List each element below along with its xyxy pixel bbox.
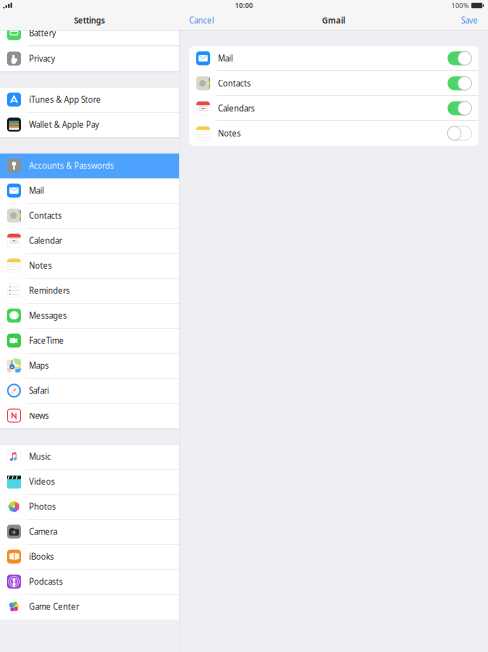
staticText: Photos — [29, 501, 56, 512]
button[interactable]: Cancel — [186, 13, 217, 28]
staticText: Notes — [218, 128, 241, 139]
staticText: Contacts — [218, 78, 251, 89]
staticText: FaceTime — [29, 335, 64, 346]
staticText: Safari — [29, 385, 49, 396]
staticText: Notes — [29, 260, 52, 271]
staticText: Mail — [218, 53, 233, 64]
staticText: iBooks — [29, 551, 54, 562]
button[interactable]: iTunes & App Store — [0, 88, 179, 113]
button[interactable]: Notes — [0, 254, 179, 279]
button[interactable]: Calendar — [0, 229, 179, 254]
button[interactable]: Reminders — [0, 279, 179, 304]
staticText: Battery — [29, 28, 56, 38]
staticText: Reminders — [29, 285, 70, 296]
button[interactable]: Contacts — [0, 204, 179, 229]
staticText: Gmail — [322, 15, 345, 26]
button[interactable]: Maps — [0, 354, 179, 379]
button[interactable]: Privacy — [0, 47, 179, 72]
staticText: Calendars — [218, 103, 255, 114]
staticText: Contacts — [29, 210, 62, 221]
staticText: Videos — [29, 476, 55, 487]
staticText: Accounts & Passwords — [29, 160, 114, 171]
staticText: 100% — [451, 1, 469, 10]
staticText: Messages — [29, 310, 67, 321]
staticText: Cancel — [189, 15, 214, 26]
button[interactable]: Save — [458, 13, 481, 28]
staticText: Settings — [74, 15, 105, 26]
button[interactable]: Accounts & Passwords — [0, 154, 179, 179]
staticText: 10:00 — [235, 1, 253, 10]
button[interactable]: Contacts — [189, 71, 478, 96]
button[interactable]: Podcasts — [0, 570, 179, 595]
staticText: Save — [461, 15, 478, 26]
staticText: Music — [29, 451, 51, 462]
staticText: Camera — [29, 526, 57, 537]
button[interactable]: Safari — [0, 379, 179, 404]
button[interactable]: Game Center — [0, 595, 179, 620]
staticText: Calendar — [29, 235, 62, 246]
button[interactable]: FaceTime — [0, 329, 179, 354]
button[interactable]: iBooks — [0, 545, 179, 570]
button[interactable]: Messages — [0, 304, 179, 329]
staticText: News — [29, 410, 49, 421]
staticText: Maps — [29, 360, 49, 371]
button[interactable]: Mail — [189, 46, 478, 71]
button[interactable]: Notes — [189, 121, 478, 146]
staticText: Podcasts — [29, 576, 63, 587]
staticText: Game Center — [29, 601, 79, 612]
button[interactable]: Mail — [0, 179, 179, 204]
button[interactable]: Camera — [0, 520, 179, 545]
staticText: iTunes & App Store — [29, 94, 101, 105]
button[interactable]: News — [0, 404, 179, 429]
staticText: Wallet & Apple Pay — [29, 119, 99, 130]
button[interactable]: Photos — [0, 495, 179, 520]
button[interactable]: Wallet & Apple Pay — [0, 113, 179, 138]
button[interactable]: Music — [0, 445, 179, 470]
button[interactable]: Battery — [0, 31, 179, 47]
button[interactable]: Videos — [0, 470, 179, 495]
staticText: Mail — [29, 185, 44, 196]
staticText: Privacy — [29, 53, 55, 64]
button[interactable]: Calendars — [189, 96, 478, 121]
